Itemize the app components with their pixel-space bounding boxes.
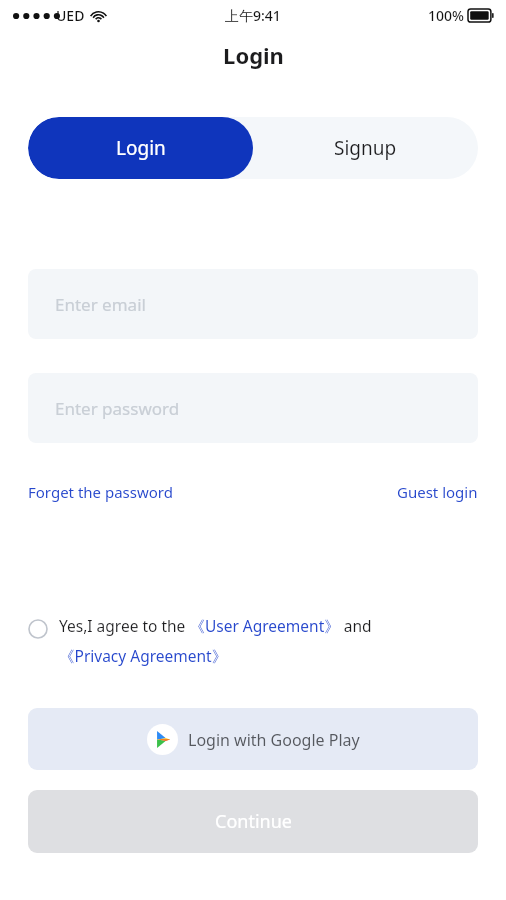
staticText: Enter email [55,293,146,316]
staticText: Continue [215,809,292,834]
staticText: Signup [334,135,397,161]
button[interactable]: Yes,I agree to the 《User Agreement》 and … [59,615,372,666]
staticText: Login [116,135,166,161]
staticText: Yes,I agree to the 《User Agreement》 and … [59,615,372,666]
button[interactable]: Continue [28,790,478,853]
staticText: 100% [428,6,464,25]
button[interactable]: Enter password [28,373,478,443]
staticText: Login with Google Play [188,729,360,751]
staticText: 上午9:41 [225,6,281,25]
button[interactable]: Agree to terms checkbox [28,619,48,639]
staticText: Enter password [55,397,180,420]
button[interactable]: Enter email [28,269,478,339]
staticText: Login [223,40,284,70]
button[interactable]: Login [28,117,253,179]
button[interactable]: Forget the password [28,482,173,502]
button[interactable]: Signup [253,117,478,179]
button[interactable]: Login with Google Play [28,708,478,770]
staticText: UED [56,6,85,25]
staticText: Guest login [397,482,478,502]
button[interactable]: Guest login [397,482,478,502]
staticText: Forget the password [28,482,173,502]
